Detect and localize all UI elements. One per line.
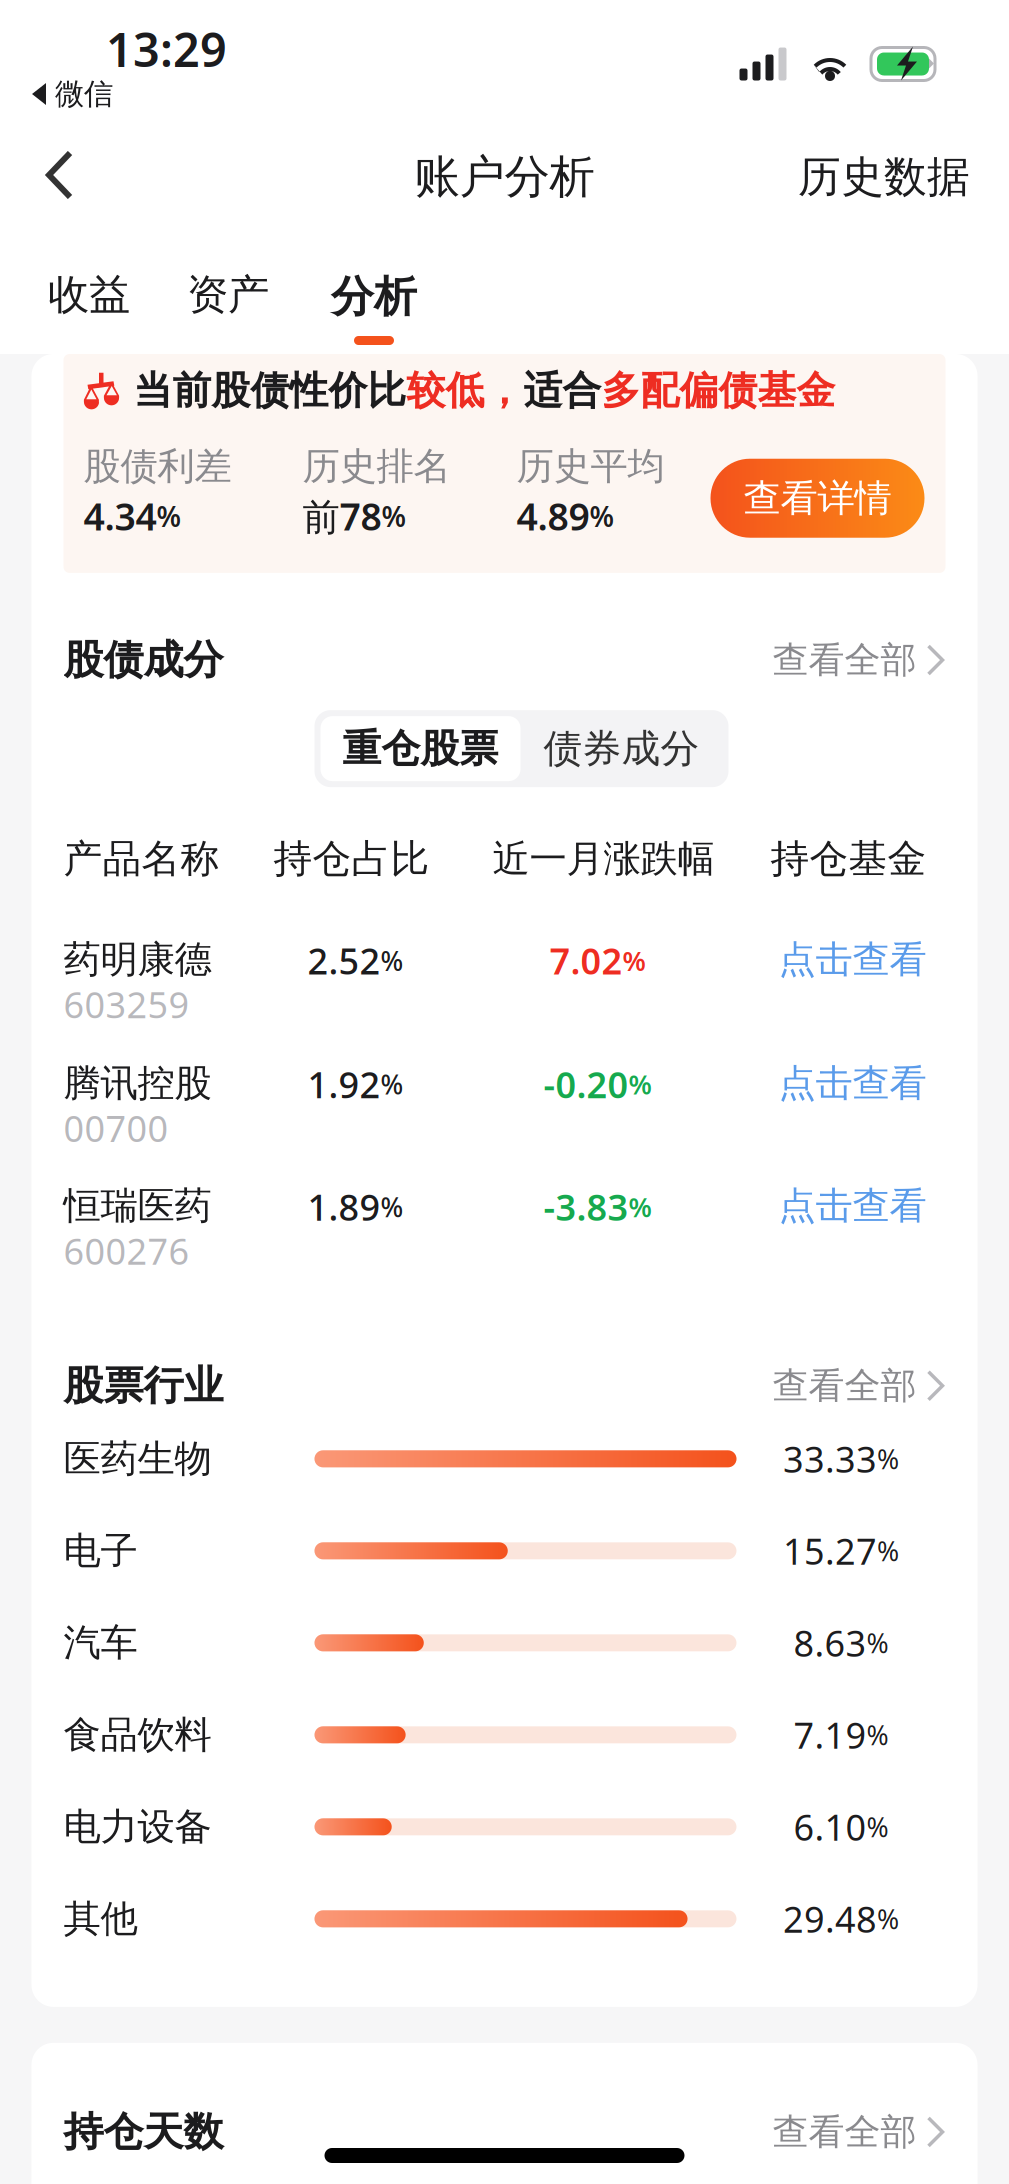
staticText: %	[866, 1625, 888, 1660]
staticText: 微信	[55, 76, 113, 112]
staticText: ，	[484, 367, 523, 414]
staticText: 资产	[187, 269, 269, 320]
button[interactable]: 查看详情	[710, 447, 924, 538]
staticText: %	[877, 1901, 899, 1936]
staticText: 股债利差	[83, 443, 231, 489]
staticText: 7.19	[793, 1711, 866, 1759]
staticText: 其他	[63, 1896, 137, 1942]
staticText: 点击查看	[778, 937, 926, 982]
staticText: 持仓天数	[63, 2107, 223, 2156]
staticText: 产品名称	[63, 835, 219, 883]
staticText: 点击查看	[778, 1183, 926, 1229]
staticText: 近一月涨跌幅	[492, 836, 714, 882]
button[interactable]: 历史数据	[774, 111, 1009, 227]
button[interactable]: 债券成分	[520, 716, 722, 781]
staticText: %	[877, 1533, 899, 1568]
staticText: 点击查看	[778, 1060, 926, 1106]
staticText: 持仓占比	[273, 835, 429, 883]
staticText: 腾讯控股	[63, 1060, 211, 1106]
staticText: 查看详情	[743, 475, 891, 521]
staticText: %	[866, 1717, 888, 1752]
staticText: 29.48	[783, 1895, 877, 1943]
staticText: %	[628, 1189, 651, 1225]
staticText: 股债成分	[63, 635, 223, 685]
staticText: %	[866, 1809, 888, 1844]
staticText: 前78	[302, 491, 381, 541]
staticText: 收益	[48, 269, 130, 320]
staticText: 查看全部	[772, 1364, 916, 1408]
staticText: %	[381, 497, 406, 535]
staticText: 医药生物	[63, 1436, 211, 1482]
staticText: 历史数据	[798, 151, 970, 203]
staticText: 股票行业	[63, 1361, 223, 1410]
staticText: 药明康德	[63, 937, 211, 982]
staticText: 较低	[406, 367, 484, 414]
staticText: %	[877, 1441, 899, 1476]
staticText: 电子	[63, 1528, 137, 1574]
staticText: 13:29	[106, 18, 227, 80]
staticText: -3.83	[543, 1183, 628, 1231]
staticText: %	[380, 1066, 403, 1102]
staticText: 查看全部	[772, 638, 916, 682]
button[interactable]: 资产	[173, 269, 283, 354]
staticText: 持仓基金	[770, 835, 926, 883]
staticText: 电力设备	[63, 1804, 211, 1850]
staticText: 7.02	[549, 937, 622, 984]
staticText: 适合	[523, 367, 601, 414]
staticText: 债券成分	[543, 725, 699, 772]
staticText: 恒瑞医药	[63, 1183, 211, 1229]
staticText: 1.92	[307, 1060, 380, 1108]
button[interactable]: 查看全部	[772, 1358, 945, 1414]
staticText: 查看全部	[772, 2110, 916, 2154]
button[interactable]: 点击查看	[778, 1060, 926, 1106]
staticText: %	[380, 1189, 403, 1225]
staticText: 4.89	[516, 491, 589, 541]
staticText: 33.33	[783, 1435, 877, 1483]
staticText: %	[628, 1066, 651, 1102]
button[interactable]: 查看全部	[772, 2104, 945, 2160]
staticText: %	[622, 943, 645, 978]
staticText: 分析	[331, 271, 417, 323]
staticText: %	[589, 497, 614, 535]
button[interactable]: 分析	[317, 271, 431, 354]
staticText: 8.63	[793, 1619, 866, 1667]
button[interactable]: 查看全部	[772, 632, 945, 688]
staticText: 600276	[63, 1227, 189, 1275]
staticText: 账户分析	[414, 149, 594, 205]
staticText: 6.10	[793, 1803, 866, 1851]
staticText: 重仓股票	[342, 725, 498, 772]
staticText: 1.89	[307, 1183, 380, 1231]
staticText: 食品饮料	[63, 1712, 211, 1758]
staticText: 多配偏债基金	[601, 367, 835, 414]
staticText: 15.27	[783, 1527, 877, 1575]
staticText: 00700	[63, 1104, 168, 1152]
staticText: 4.34	[83, 491, 156, 541]
button[interactable]: 重仓股票	[320, 716, 520, 781]
staticText: 603259	[63, 980, 189, 1028]
button[interactable]: 返回	[0, 122, 120, 216]
staticText: -0.20	[543, 1060, 628, 1108]
staticText: 历史平均	[516, 443, 664, 489]
staticText: 汽车	[63, 1620, 137, 1666]
staticText: 当前股债性价比	[133, 367, 406, 414]
button[interactable]: 收益	[34, 269, 144, 354]
button[interactable]: 点击查看	[778, 937, 926, 982]
staticText: 2.52	[307, 937, 380, 984]
staticText: %	[156, 497, 181, 535]
button[interactable]: 点击查看	[778, 1183, 926, 1229]
staticText: %	[380, 943, 403, 978]
staticText: 历史排名	[302, 443, 450, 489]
